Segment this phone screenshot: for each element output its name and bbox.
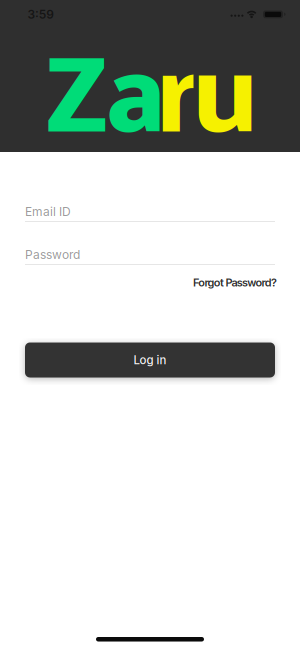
staticText: Forgot Password?: [193, 276, 277, 289]
button[interactable]: Log in: [25, 342, 275, 377]
staticText: Email ID: [25, 204, 71, 219]
staticText: u: [192, 0, 258, 193]
staticText: r: [156, 0, 202, 193]
button[interactable]: Password: [25, 247, 275, 267]
staticText: Log in: [133, 353, 166, 367]
staticText: Z: [45, 0, 108, 193]
staticText: Password: [25, 247, 80, 262]
staticText: 3:59: [27, 7, 54, 22]
button[interactable]: Forgot Password?: [25, 276, 277, 289]
staticText: a: [106, 0, 165, 193]
button[interactable]: Email ID: [25, 204, 275, 224]
